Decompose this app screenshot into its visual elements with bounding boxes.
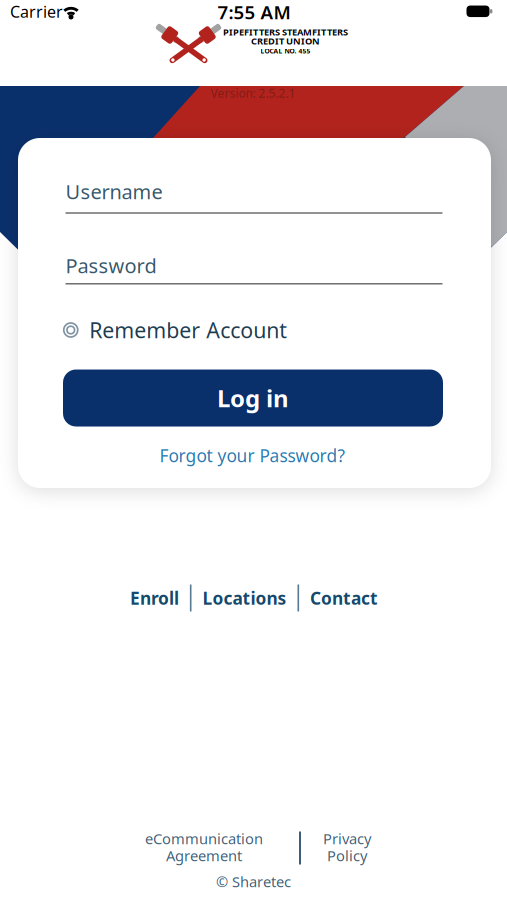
button[interactable]: Enroll <box>130 586 179 609</box>
staticText: Forgot your Password? <box>159 444 345 467</box>
button[interactable]: Username <box>65 180 442 214</box>
staticText: Remember Account <box>89 316 287 344</box>
staticText: PIPEFITTERS STEAMFITTERS <box>223 26 348 38</box>
button[interactable]: Log in <box>63 369 443 426</box>
button[interactable]: Forgot your Password? <box>159 444 345 467</box>
staticText: Locations <box>202 586 286 609</box>
staticText: Log in <box>217 382 289 414</box>
staticText: Password <box>65 252 156 279</box>
button[interactable]: Locations <box>202 586 286 609</box>
button[interactable]: eCommunication <box>145 829 263 865</box>
staticText: CREDIT UNION <box>251 35 320 47</box>
button[interactable]: Privacy <box>323 829 371 865</box>
staticText: LOCAL NO. 455 <box>260 47 310 55</box>
button[interactable]: Password <box>65 251 442 285</box>
staticText: © Sharetec <box>216 872 291 891</box>
staticText: Carrier <box>10 1 63 22</box>
staticText: 7:55 AM <box>217 0 290 24</box>
staticText: Privacy <box>323 829 371 848</box>
button[interactable]: Remember Account <box>64 316 287 344</box>
staticText: Version: 2.5.2.1 <box>210 85 295 101</box>
staticText: Policy <box>327 846 367 865</box>
staticText: Enroll <box>130 586 179 609</box>
staticText: Agreement <box>166 846 242 865</box>
button[interactable]: Contact <box>310 586 378 609</box>
staticText: Contact <box>310 586 378 609</box>
staticText: Username <box>65 178 162 205</box>
staticText: eCommunication <box>145 829 263 848</box>
